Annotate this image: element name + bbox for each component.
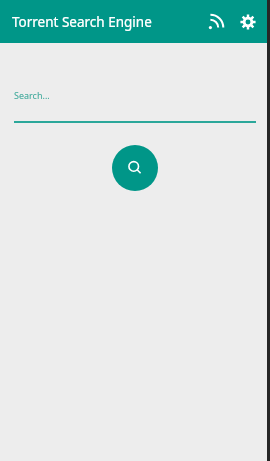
button[interactable]: RSS feeds [201,8,229,36]
button[interactable]: Settings [234,8,262,36]
button[interactable]: Search [112,145,158,191]
staticText: Search... [14,89,50,101]
button[interactable]: Search... [14,89,256,123]
staticText: Torrent Search Engine [12,13,152,31]
